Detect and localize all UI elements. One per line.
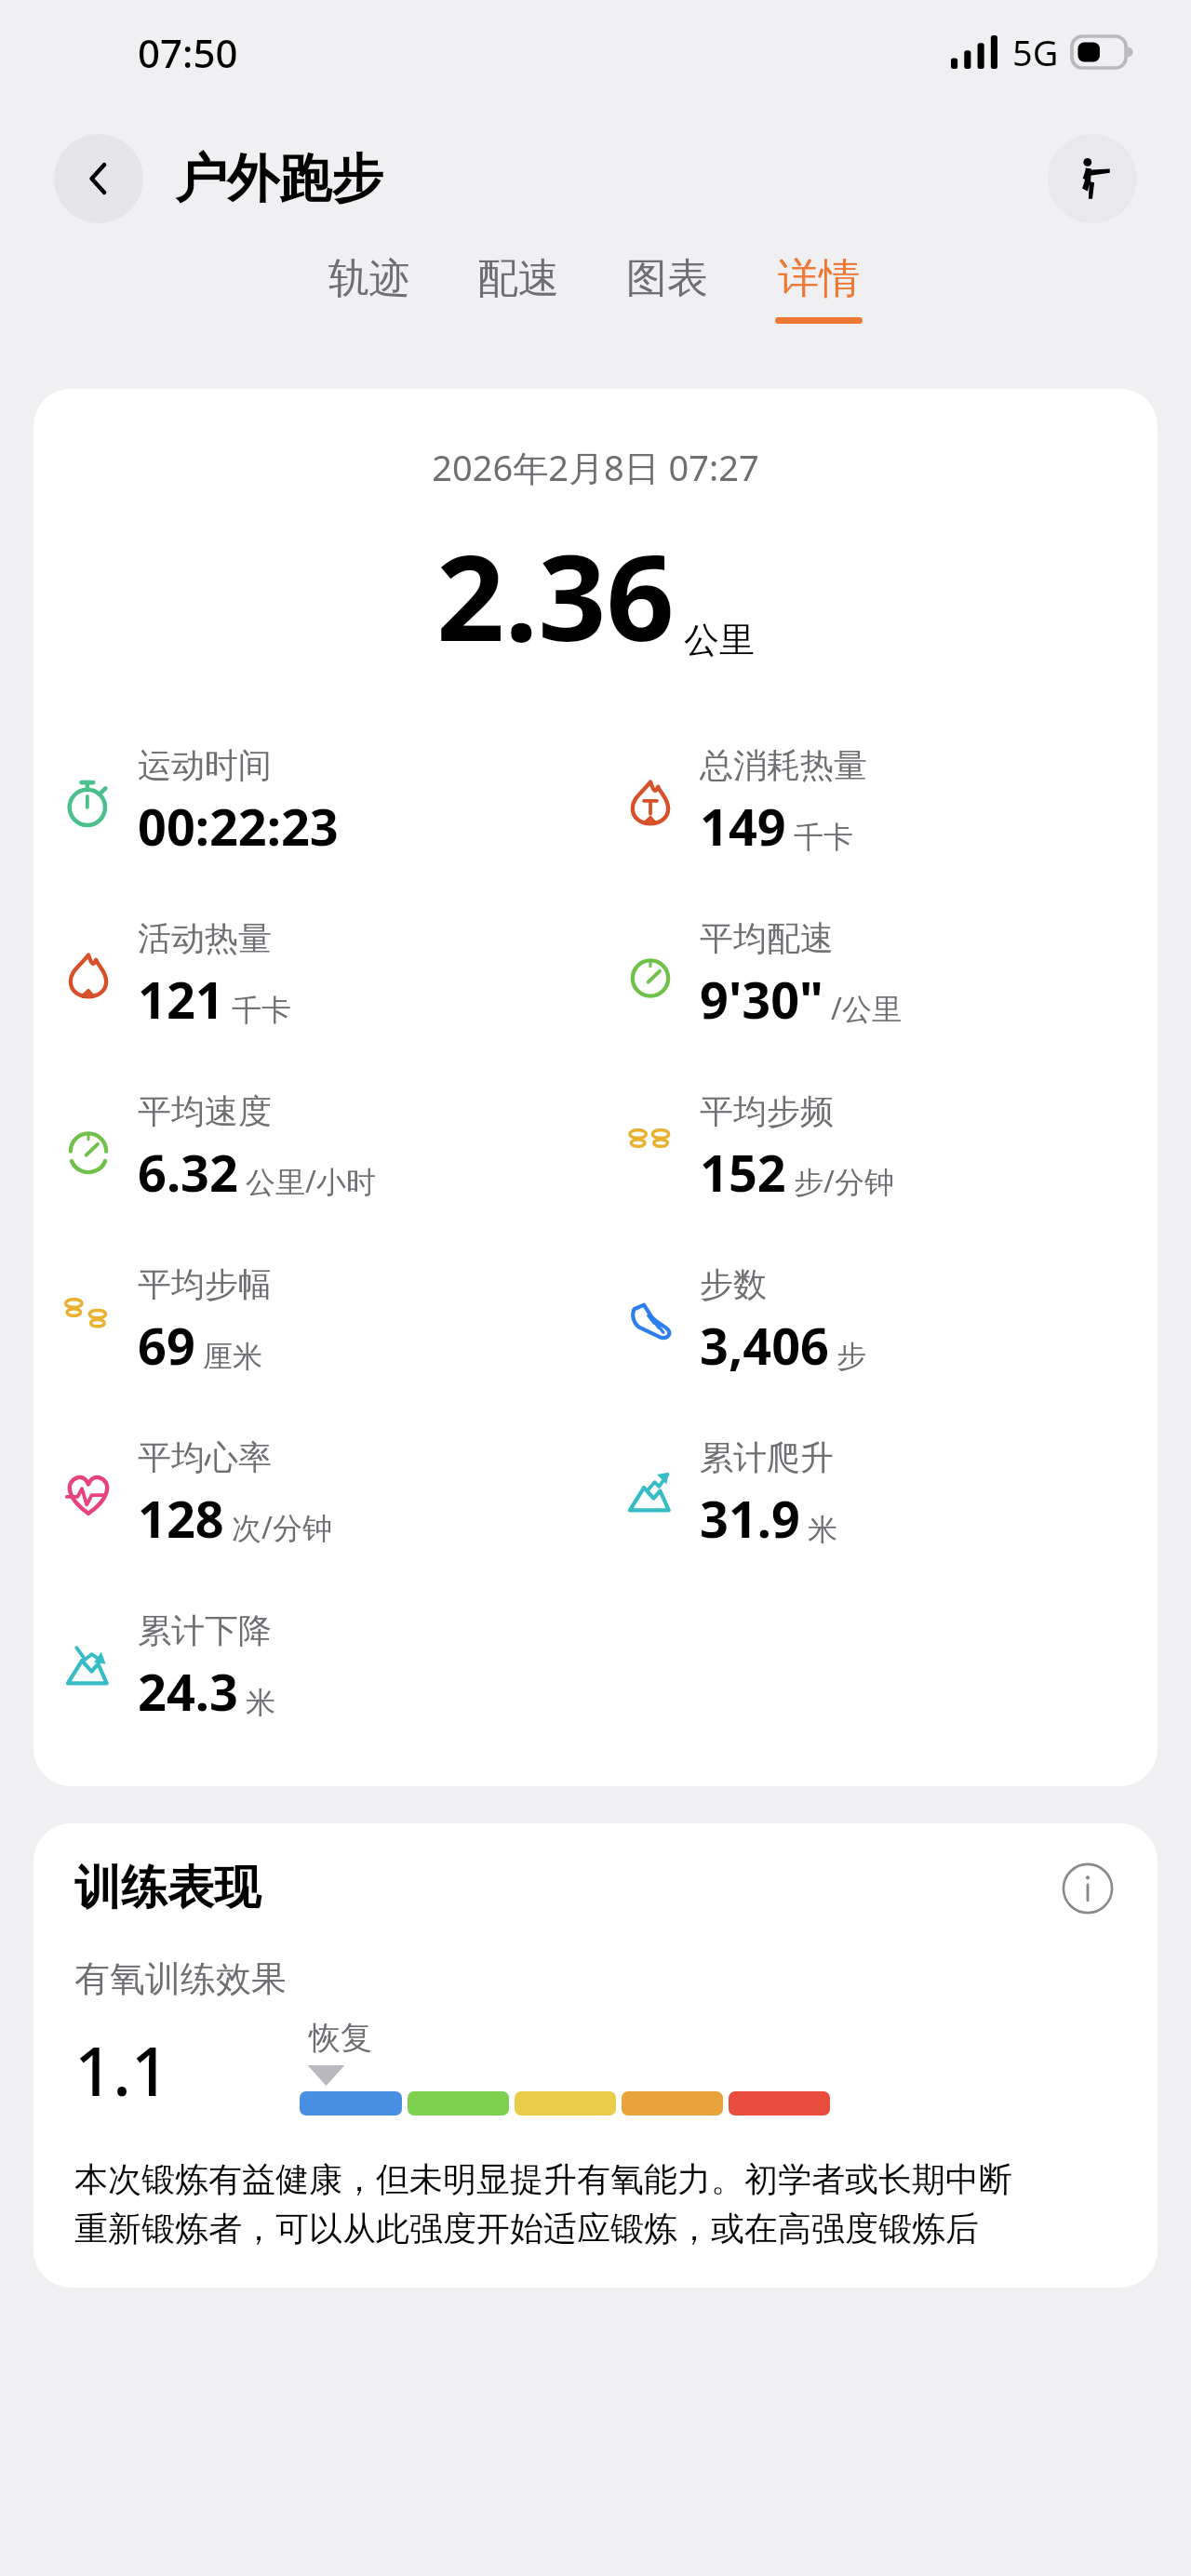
button[interactable]: 图表 <box>626 253 708 324</box>
staticText: 轨迹 <box>328 253 410 304</box>
staticText: 图表 <box>626 253 708 304</box>
staticText: 配速 <box>477 253 559 304</box>
staticText: 米 <box>246 1684 275 1721</box>
staticText: 次/分钟 <box>232 1507 332 1548</box>
staticText: 6.32 <box>138 1138 238 1207</box>
staticText: 活动热量 <box>138 917 272 959</box>
staticText: 2026年2月8日 07:27 <box>33 443 1158 491</box>
staticText: 00:22:23 <box>138 792 339 861</box>
button[interactable]: 详情 <box>775 253 863 324</box>
staticText: 步/分钟 <box>794 1161 894 1202</box>
staticText: 训练表现 <box>74 1859 261 1917</box>
staticText: 总消耗热量 <box>700 744 867 786</box>
button[interactable]: 平均心率 <box>33 1423 595 1565</box>
button[interactable]: 说明 <box>1059 1860 1117 1917</box>
button[interactable]: 运动类型 <box>1048 134 1137 223</box>
staticText: 152 <box>700 1138 786 1207</box>
staticText: 121 <box>138 965 224 1034</box>
staticText: 米 <box>808 1511 837 1548</box>
staticText: 详情 <box>778 253 860 304</box>
staticText: 累计爬升 <box>700 1436 834 1478</box>
staticText: 69 <box>138 1311 195 1380</box>
staticText: 公里 <box>684 618 755 662</box>
staticText: 128 <box>138 1484 224 1553</box>
button[interactable]: 累计爬升 <box>595 1423 1158 1565</box>
button[interactable]: 累计下降 <box>33 1596 595 1738</box>
staticText: 平均配速 <box>700 917 834 959</box>
staticText: 平均步频 <box>700 1090 834 1132</box>
staticText: 公里/小时 <box>246 1161 376 1202</box>
staticText: 千卡 <box>794 819 853 856</box>
staticText: 平均心率 <box>138 1436 272 1478</box>
staticText: 5G <box>1012 28 1059 76</box>
staticText: 1.1 <box>74 2024 169 2116</box>
staticText: 累计下降 <box>138 1609 272 1651</box>
button[interactable]: 平均速度 <box>33 1077 595 1219</box>
button[interactable]: 轨迹 <box>328 253 410 324</box>
staticText: 运动时间 <box>138 744 272 786</box>
button[interactable]: 配速 <box>477 253 559 324</box>
staticText: 9'30" <box>700 965 823 1034</box>
staticText: 平均速度 <box>138 1090 272 1132</box>
staticText: 步数 <box>700 1263 767 1305</box>
staticText: 户外跑步 <box>175 146 383 212</box>
staticText: 步 <box>836 1338 866 1375</box>
staticText: 千卡 <box>232 992 291 1029</box>
staticText: 24.3 <box>138 1657 238 1726</box>
button[interactable]: 平均配速 <box>595 904 1158 1046</box>
staticText: 2.36 <box>436 514 675 675</box>
staticText: /公里 <box>831 988 902 1029</box>
button[interactable]: 步数 <box>595 1250 1158 1392</box>
staticText: 07:50 <box>138 26 238 79</box>
button[interactable]: 活动热量 <box>33 904 595 1046</box>
button[interactable]: 平均步幅 <box>33 1250 595 1392</box>
staticText: 本次锻炼有益健康，但未明显提升有氧能力。初学者或长期中断 重新锻炼者，可以从此强… <box>74 2158 1012 2250</box>
button[interactable]: 平均步频 <box>595 1077 1158 1219</box>
staticText: 31.9 <box>700 1484 800 1553</box>
button[interactable]: 总消耗热量 <box>595 731 1158 873</box>
button[interactable]: 运动时间 <box>33 731 595 873</box>
staticText: 恢复 <box>309 2018 372 2058</box>
staticText: 3,406 <box>700 1311 829 1380</box>
staticText: 149 <box>700 792 786 861</box>
staticText: 厘米 <box>203 1338 262 1375</box>
staticText: 有氧训练效果 <box>74 1956 287 2001</box>
button[interactable]: 返回 <box>54 134 143 223</box>
staticText: 平均步幅 <box>138 1263 272 1305</box>
